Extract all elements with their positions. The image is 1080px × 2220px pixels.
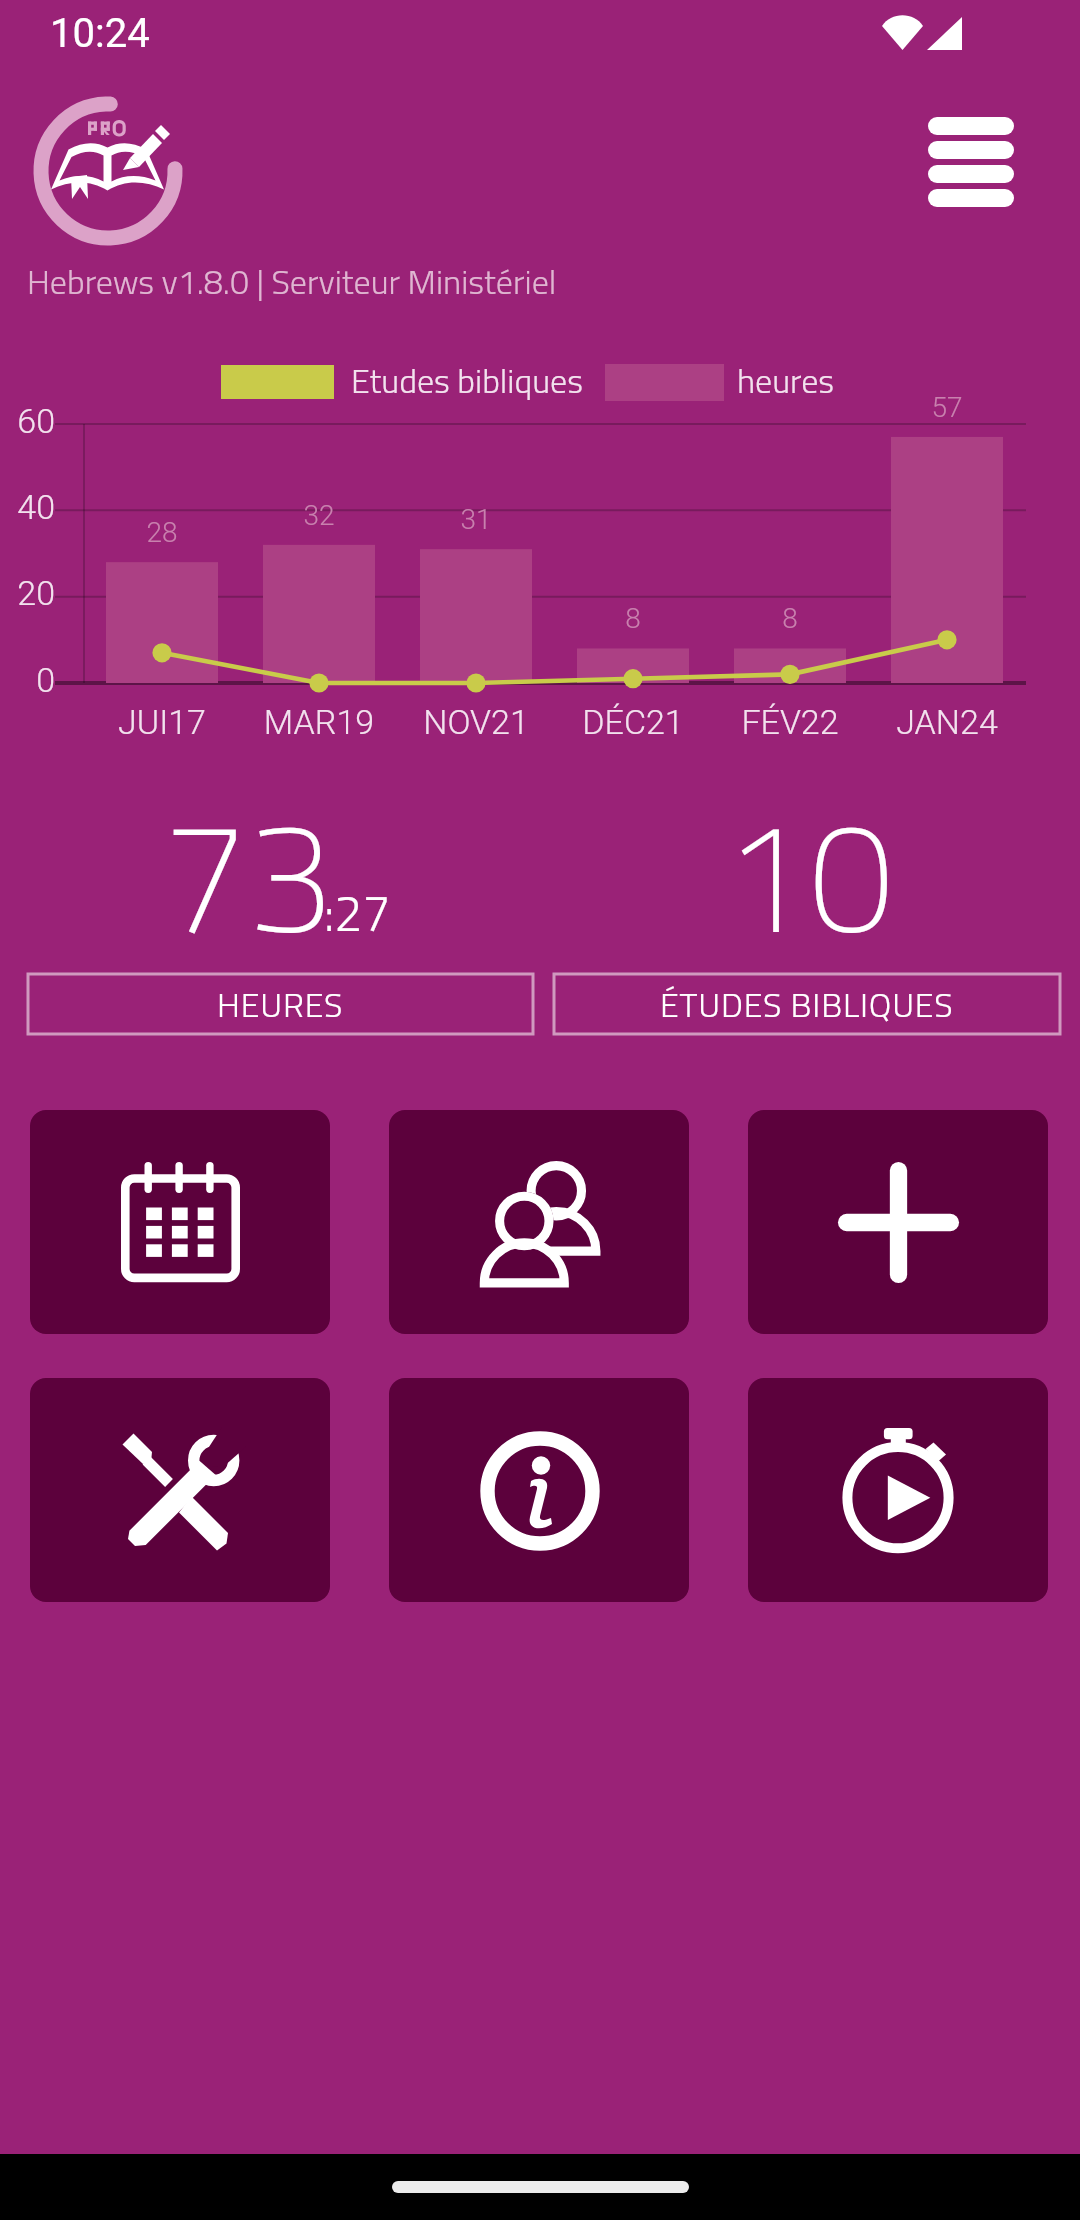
staticText: 60	[0, 401, 55, 441]
staticText: 10:24	[50, 10, 150, 57]
button[interactable]: Tools	[30, 1378, 330, 1602]
staticText: FÉV22	[700, 702, 880, 742]
staticText: HEURES	[217, 978, 344, 1030]
button[interactable]: Add entry	[748, 1110, 1048, 1334]
staticText: heures	[737, 354, 835, 406]
staticText: 40	[0, 487, 55, 527]
button[interactable]: Timer	[748, 1378, 1048, 1602]
staticText: MAR19	[229, 702, 409, 742]
staticText: 28	[102, 516, 222, 549]
staticText: 10	[722, 758, 895, 992]
button[interactable]: Calendar	[30, 1110, 330, 1334]
staticText: 20	[0, 573, 55, 613]
staticText: :27	[324, 874, 391, 950]
button[interactable]: Info	[389, 1378, 689, 1602]
button[interactable]: ÉTUDES BIBLIQUES	[554, 974, 1060, 1034]
staticText: 31	[416, 503, 536, 536]
button[interactable]: Menu	[928, 117, 1014, 207]
staticText: 0	[0, 660, 55, 700]
staticText: 73	[161, 758, 334, 992]
staticText: 57	[887, 391, 1007, 424]
staticText: 32	[259, 499, 379, 532]
staticText: JUI17	[72, 702, 252, 742]
staticText: Hebrews v1.8.0 | Serviteur Ministériel	[27, 255, 557, 307]
staticText: ÉTUDES BIBLIQUES	[660, 978, 954, 1030]
staticText: Etudes bibliques	[351, 354, 583, 406]
staticText: NOV21	[386, 702, 566, 742]
staticText: 8	[730, 602, 850, 635]
staticText: DÉC21	[543, 702, 723, 742]
button[interactable]: HEURES	[28, 974, 533, 1034]
staticText: 8	[573, 602, 693, 635]
staticText: JAN24	[857, 702, 1037, 742]
button[interactable]: Contacts	[389, 1110, 689, 1334]
